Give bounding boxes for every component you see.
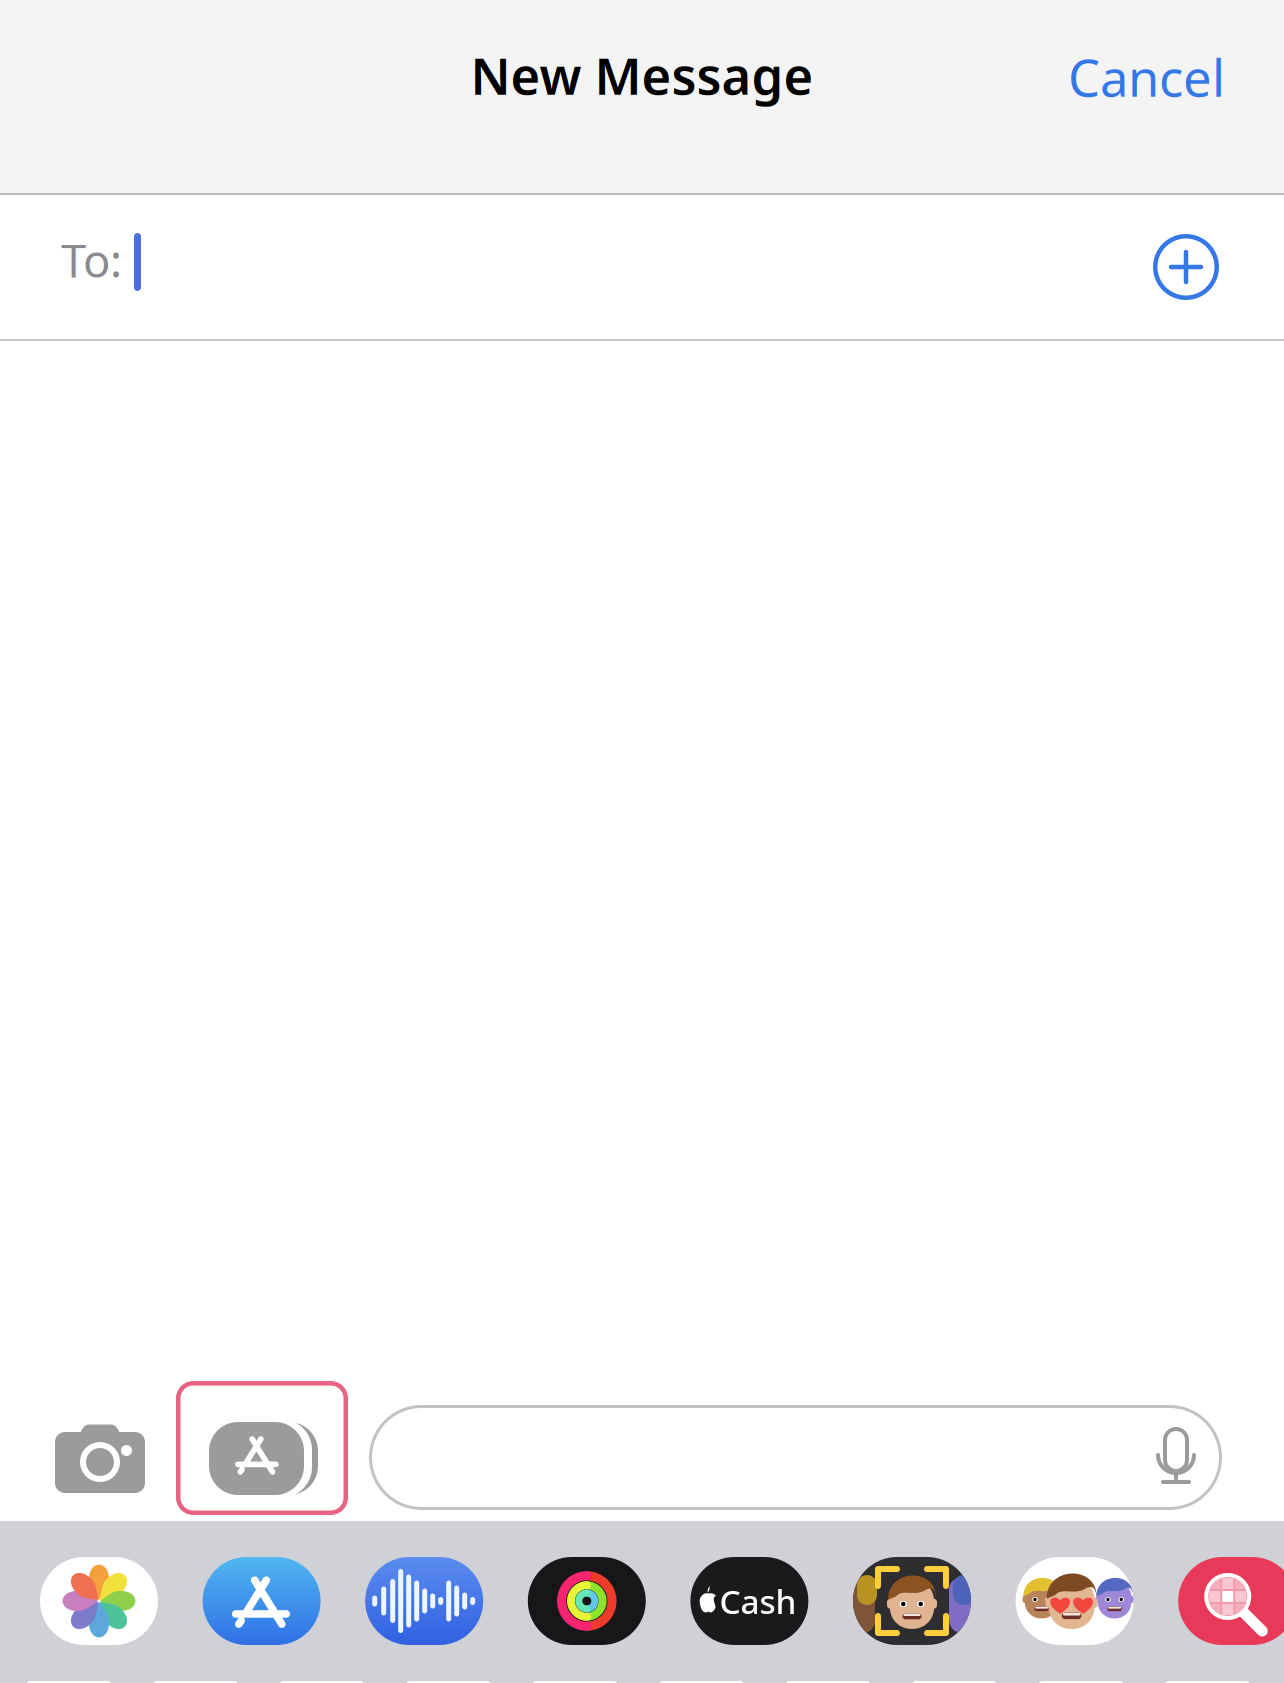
button[interactable]: Add contact: [1153, 234, 1219, 300]
staticText: New Message: [470, 41, 813, 109]
button[interactable]: Apple Cash: [690, 1557, 808, 1645]
staticText: To:: [61, 230, 122, 290]
button[interactable]: Camera: [55, 1423, 145, 1493]
staticText: Cancel: [1068, 43, 1225, 111]
button[interactable]: Fitness: [528, 1557, 646, 1645]
button[interactable]: Images: [1178, 1557, 1284, 1645]
button[interactable]: [369, 1405, 1222, 1510]
button[interactable]: App Store: [176, 1381, 348, 1515]
button[interactable]: Memoji: [853, 1557, 971, 1645]
staticText: Cash: [719, 1579, 796, 1623]
button[interactable]: Photos: [40, 1557, 158, 1645]
button[interactable]: Memoji Stickers: [1016, 1557, 1134, 1645]
button[interactable]: App Store: [203, 1557, 321, 1645]
button[interactable]: Audio Message: [365, 1557, 483, 1645]
button[interactable]: Cancel: [995, 22, 1225, 132]
